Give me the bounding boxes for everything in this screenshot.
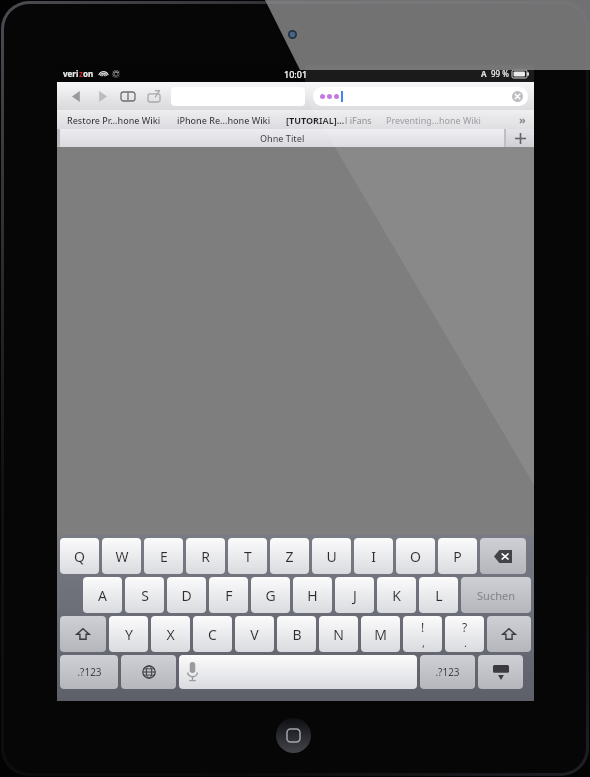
button[interactable]: Y: [109, 616, 148, 652]
staticText: l iFans: [345, 114, 372, 126]
staticText: E: [160, 547, 168, 566]
staticText: W: [115, 547, 129, 566]
button[interactable]: G: [251, 577, 290, 613]
button[interactable]: [TUTORIAL]...: [286, 114, 372, 126]
button[interactable]: S: [125, 577, 164, 613]
staticText: K: [392, 586, 401, 605]
staticText: N: [333, 625, 344, 644]
staticText: Suchen: [477, 588, 515, 603]
button[interactable]: M: [361, 616, 400, 652]
button[interactable]: Key: [480, 538, 526, 574]
staticText: ?: [462, 619, 468, 635]
button[interactable]: N: [319, 616, 358, 652]
button[interactable]: Key: [121, 655, 176, 689]
button[interactable]: Key: [478, 655, 523, 689]
button[interactable]: Home: [276, 718, 311, 753]
button[interactable]: J: [335, 577, 374, 613]
staticText: M: [374, 625, 387, 644]
button[interactable]: .?123: [420, 655, 475, 689]
button[interactable]: C: [193, 616, 232, 652]
button[interactable]: V: [235, 616, 274, 652]
staticText: on: [83, 68, 94, 79]
button[interactable]: I: [354, 538, 393, 574]
staticText: Q: [74, 547, 85, 566]
staticText: V: [250, 625, 259, 644]
button[interactable]: Bookmarks: [115, 84, 141, 108]
staticText: [TUTORIAL]...: [286, 114, 345, 126]
staticText: .: [464, 635, 467, 650]
staticText: .?123: [77, 665, 102, 679]
button[interactable]: R: [186, 538, 225, 574]
staticText: F: [225, 586, 233, 605]
button[interactable]: Z: [270, 538, 309, 574]
staticText: .?123: [435, 665, 460, 679]
button[interactable]: Ohne Titel: [60, 129, 504, 147]
button[interactable]: Key: [487, 616, 531, 652]
staticText: »: [519, 112, 526, 127]
staticText: R: [201, 547, 210, 566]
button[interactable]: Forward: [89, 84, 115, 108]
staticText: P: [453, 547, 462, 566]
button[interactable]: X: [151, 616, 190, 652]
button[interactable]: A: [83, 577, 122, 613]
staticText: !: [421, 619, 425, 635]
button[interactable]: T: [228, 538, 267, 574]
staticText: O: [410, 547, 421, 566]
staticText: ,: [422, 635, 425, 650]
staticText: U: [326, 547, 337, 566]
staticText: Z: [285, 547, 294, 566]
button[interactable]: H: [293, 577, 332, 613]
button[interactable]: D: [167, 577, 206, 613]
staticText: A: [481, 68, 487, 79]
button[interactable]: .?123: [60, 655, 118, 689]
button[interactable]: P: [438, 538, 477, 574]
staticText: L: [435, 586, 443, 605]
button[interactable]: O: [396, 538, 435, 574]
staticText: Y: [125, 625, 133, 644]
staticText: C: [208, 625, 217, 644]
button[interactable]: New tab: [506, 129, 534, 147]
staticText: B: [292, 625, 302, 644]
button[interactable]: B: [277, 616, 316, 652]
button[interactable]: L: [419, 577, 458, 613]
staticText: z: [79, 68, 83, 79]
staticText: veri: [63, 68, 79, 79]
staticText: S: [141, 586, 149, 605]
button[interactable]: More bookmarks: [519, 112, 526, 127]
button[interactable]: Share: [141, 84, 167, 108]
staticText: X: [166, 625, 175, 644]
staticText: J: [353, 586, 357, 605]
button[interactable]: E: [144, 538, 183, 574]
button[interactable]: Preventing...hone Wiki: [386, 114, 481, 126]
button[interactable]: [313, 87, 528, 106]
staticText: I: [371, 547, 376, 566]
button[interactable]: K: [377, 577, 416, 613]
button[interactable]: Q: [60, 538, 99, 574]
staticText: 99 %: [491, 68, 509, 79]
button[interactable]: iPhone Re...hone Wiki: [177, 114, 271, 126]
staticText: D: [181, 586, 192, 605]
button[interactable]: Key: [403, 616, 442, 652]
button[interactable]: Key: [60, 616, 106, 652]
staticText: 10:01: [284, 68, 308, 80]
button[interactable]: W: [102, 538, 141, 574]
button[interactable]: Back: [63, 84, 89, 108]
button[interactable]: U: [312, 538, 351, 574]
staticText: T: [244, 547, 252, 566]
staticText: H: [307, 586, 318, 605]
button[interactable]: Key: [179, 655, 417, 689]
button[interactable]: F: [209, 577, 248, 613]
staticText: A: [98, 586, 107, 605]
staticText: G: [265, 586, 276, 605]
button[interactable]: Restore Pr...hone Wiki: [67, 114, 161, 126]
staticText: Ohne Titel: [260, 132, 305, 144]
button[interactable]: Suchen: [461, 577, 531, 613]
button[interactable]: Key: [445, 616, 484, 652]
